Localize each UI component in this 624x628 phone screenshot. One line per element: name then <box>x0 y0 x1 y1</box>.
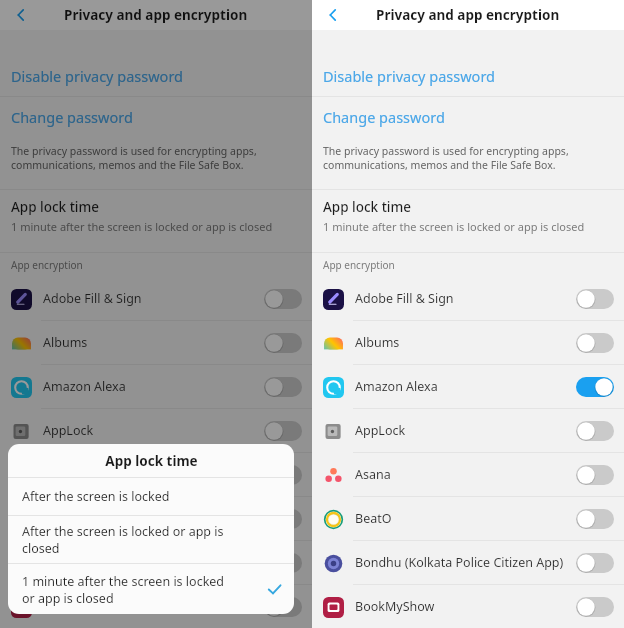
button[interactable]: Off <box>264 421 302 441</box>
button[interactable]: After the screen is locked <box>8 478 294 515</box>
button[interactable]: Off <box>576 333 614 353</box>
button[interactable]: After the screen is locked or app is clo… <box>8 516 294 563</box>
staticText: Asana <box>43 466 262 483</box>
staticText: BookMyShow <box>355 598 574 615</box>
staticText: BeatO <box>43 510 262 527</box>
staticText: Privacy and app encryption <box>64 6 248 24</box>
button[interactable]: 1 minute after the screen is locked or a… <box>8 564 294 614</box>
button[interactable]: Asana <box>0 453 312 496</box>
button[interactable]: Off <box>576 597 614 617</box>
other: Selected <box>264 579 284 599</box>
button[interactable]: AppLock <box>312 409 624 452</box>
staticText: After the screen is locked or app is clo… <box>22 523 284 556</box>
button[interactable]: App lock time <box>312 190 624 242</box>
button[interactable]: On <box>576 377 614 397</box>
button[interactable]: Disable privacy password <box>0 56 312 96</box>
button[interactable]: BeatO <box>0 497 312 540</box>
button[interactable]: Amazon Alexa <box>0 365 312 408</box>
button[interactable]: Change password <box>0 97 312 137</box>
button[interactable]: Off <box>576 289 614 309</box>
staticText: Bondhu (Kolkata Police Citizen App) <box>43 554 262 571</box>
staticText: Adobe Fill & Sign <box>355 290 574 307</box>
staticText: Disable privacy password <box>11 66 184 86</box>
staticText: Change password <box>11 107 133 127</box>
staticText: Asana <box>355 466 574 483</box>
staticText: Albums <box>43 334 262 351</box>
staticText: App lock time <box>105 452 198 470</box>
button[interactable]: Off <box>576 509 614 529</box>
staticText: Amazon Alexa <box>355 378 574 395</box>
button[interactable]: Off <box>264 553 302 573</box>
button[interactable]: Off <box>576 553 614 573</box>
button[interactable]: Asana <box>312 453 624 496</box>
button[interactable]: Bondhu (Kolkata Police Citizen App) <box>312 541 624 584</box>
button[interactable]: BookMyShow <box>0 585 312 628</box>
button[interactable]: Adobe Fill & Sign <box>312 277 624 320</box>
staticText: Disable privacy password <box>323 66 496 86</box>
staticText: App lock time <box>323 198 412 216</box>
staticText: Adobe Fill & Sign <box>43 290 262 307</box>
staticText: Bondhu (Kolkata Police Citizen App) <box>355 554 574 571</box>
button[interactable]: Off <box>576 421 614 441</box>
staticText: After the screen is locked <box>22 488 284 505</box>
button[interactable]: Off <box>576 465 614 485</box>
button[interactable]: Bondhu (Kolkata Police Citizen App) <box>0 541 312 584</box>
staticText: Privacy and app encryption <box>376 6 560 24</box>
button[interactable]: Off <box>264 377 302 397</box>
button[interactable]: Amazon Alexa <box>312 365 624 408</box>
staticText: BookMyShow <box>43 598 262 615</box>
button[interactable]: Back <box>318 0 348 30</box>
button[interactable]: Disable privacy password <box>312 56 624 96</box>
button[interactable]: Albums <box>312 321 624 364</box>
staticText: App encryption <box>11 258 83 272</box>
button[interactable]: Off <box>264 465 302 485</box>
button[interactable]: Off <box>264 597 302 617</box>
staticText: The privacy password is used for encrypt… <box>323 144 569 172</box>
button[interactable]: Change password <box>312 97 624 137</box>
staticText: AppLock <box>355 422 574 439</box>
button[interactable]: Off <box>264 509 302 529</box>
button[interactable]: App lock time <box>0 190 312 242</box>
button[interactable]: Off <box>264 289 302 309</box>
staticText: AppLock <box>43 422 262 439</box>
button[interactable]: Adobe Fill & Sign <box>0 277 312 320</box>
button[interactable]: Back <box>6 0 36 30</box>
staticText: The privacy password is used for encrypt… <box>11 144 257 172</box>
staticText: 1 minute after the screen is locked or a… <box>11 219 273 234</box>
button[interactable]: BeatO <box>312 497 624 540</box>
staticText: App encryption <box>323 258 395 272</box>
staticText: Change password <box>323 107 445 127</box>
staticText: 1 minute after the screen is locked or a… <box>323 219 585 234</box>
button[interactable]: BookMyShow <box>312 585 624 628</box>
staticText: BeatO <box>355 510 574 527</box>
staticText: App lock time <box>11 198 100 216</box>
staticText: Amazon Alexa <box>43 378 262 395</box>
button[interactable]: Albums <box>0 321 312 364</box>
button[interactable]: AppLock <box>0 409 312 452</box>
button[interactable]: Off <box>264 333 302 353</box>
staticText: Albums <box>355 334 574 351</box>
staticText: 1 minute after the screen is locked or a… <box>22 573 264 606</box>
